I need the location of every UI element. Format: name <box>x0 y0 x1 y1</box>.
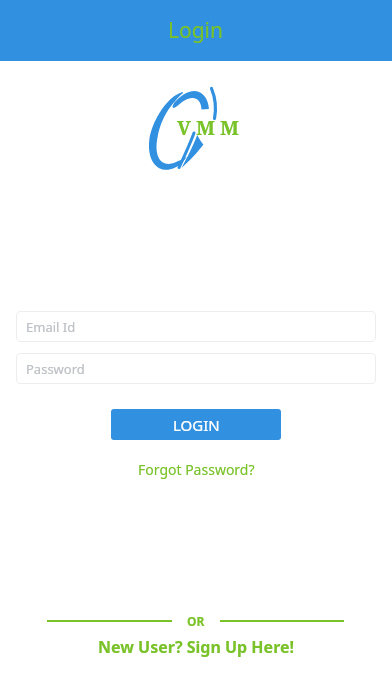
staticText: Forgot Password? <box>138 460 255 479</box>
staticText: VMM <box>177 114 245 141</box>
staticText: Email Id <box>26 318 76 336</box>
staticText: Login <box>168 16 224 45</box>
button[interactable]: New User? Sign Up Here! <box>90 633 303 661</box>
staticText: Password <box>26 360 85 378</box>
button[interactable]: Email Id <box>16 311 376 342</box>
staticText: OR <box>187 613 205 629</box>
button[interactable]: Forgot Password? <box>130 457 263 482</box>
staticText: New User? Sign Up Here! <box>98 636 295 658</box>
button[interactable]: LOGIN <box>111 409 281 440</box>
button[interactable]: Password <box>16 353 376 384</box>
staticText: LOGIN <box>173 415 220 435</box>
